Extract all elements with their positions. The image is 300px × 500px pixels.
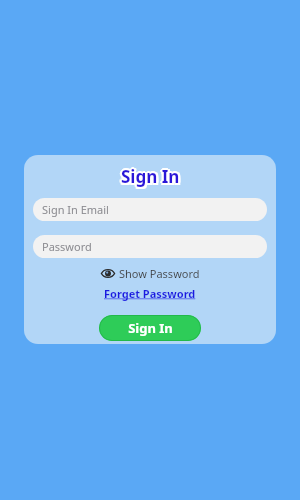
staticText: Sign In	[121, 167, 180, 190]
button[interactable]: Forget Password	[102, 285, 198, 302]
staticText: Sign In	[123, 167, 182, 190]
staticText: Sign In	[119, 165, 178, 188]
button[interactable]: Sign In Email	[33, 198, 267, 221]
staticText: Sign In	[120, 164, 179, 187]
button[interactable]: Password	[33, 235, 267, 258]
staticText: Sign In	[121, 163, 180, 186]
button[interactable]: Sign In	[99, 315, 201, 341]
staticText: Sign In	[123, 164, 182, 187]
staticText: Show Password	[119, 266, 200, 281]
staticText: Sign In	[128, 319, 173, 337]
button[interactable]: Show password	[99, 264, 202, 283]
staticText: Sign In	[123, 165, 182, 188]
staticText: Sign In	[120, 167, 179, 190]
staticText: Password	[42, 239, 92, 254]
staticText: Sign In	[121, 165, 180, 188]
other: Show password	[101, 268, 115, 279]
staticText: Sign In Email	[42, 202, 109, 217]
